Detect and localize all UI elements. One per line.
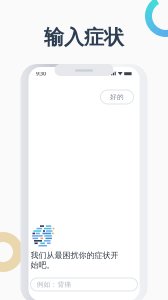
staticText: 我们从最困扰你的症状开 始吧。 — [30, 250, 118, 270]
button[interactable]: 好的 — [100, 90, 133, 104]
staticText: 好的 — [110, 93, 124, 101]
staticText: 输入症状 — [44, 25, 124, 50]
staticText: 例如：背痛 — [36, 280, 71, 289]
button[interactable]: 例如：背痛 — [30, 278, 137, 291]
staticText: 9:30 — [36, 70, 46, 77]
